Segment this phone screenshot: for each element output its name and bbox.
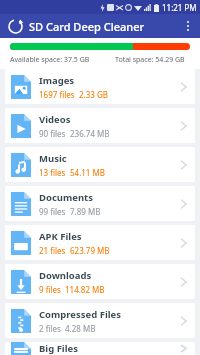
staticText: SD Card Deep Cleaner xyxy=(29,19,145,34)
staticText: Total space: 54.29 GB xyxy=(115,55,185,65)
staticText: 13 files xyxy=(39,167,66,178)
staticText: 1697 files xyxy=(39,89,75,100)
staticText: Videos xyxy=(39,113,71,126)
staticText: Big Files xyxy=(39,342,78,355)
staticText: 4.28 MB xyxy=(65,323,96,334)
staticText: APK Files xyxy=(39,230,82,243)
button[interactable]: Documents xyxy=(5,186,195,221)
staticText: 11:21 PM xyxy=(162,2,197,13)
staticText: Available space: 37.5 GB xyxy=(10,55,90,65)
button[interactable]: Compressed Files xyxy=(5,303,195,338)
staticText: Documents xyxy=(39,191,93,204)
staticText: 21 files xyxy=(39,245,66,256)
staticText: 623.79 MB xyxy=(70,245,110,256)
staticText: 2.33 GB xyxy=(79,89,108,100)
button[interactable]: APK Files xyxy=(5,225,195,260)
staticText: 7.89 MB xyxy=(70,206,101,217)
staticText: Music xyxy=(39,152,67,165)
button[interactable]: Music xyxy=(5,147,195,182)
button[interactable]: Images xyxy=(5,69,195,104)
button[interactable]: Downloads xyxy=(5,264,195,299)
staticText: 2 files xyxy=(39,323,61,334)
button[interactable]: Videos xyxy=(5,108,195,143)
staticText: Images xyxy=(39,74,75,87)
staticText: 90 files xyxy=(39,128,66,139)
staticText: 236.74 MB xyxy=(70,128,110,139)
button[interactable]: Big Files xyxy=(5,342,195,355)
staticText: 9 files xyxy=(39,284,61,295)
staticText: Downloads xyxy=(39,269,92,282)
button[interactable]: More options xyxy=(176,14,200,38)
staticText: Compressed Files xyxy=(39,308,122,321)
staticText: 54.11 MB xyxy=(70,167,105,178)
staticText: 114.82 MB xyxy=(65,284,105,295)
staticText: 99 files xyxy=(39,206,66,217)
